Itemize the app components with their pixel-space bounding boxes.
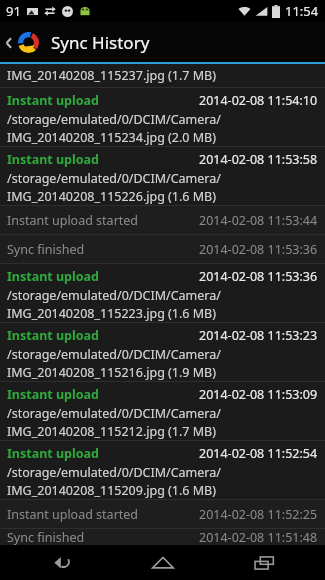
staticText: 2014-02-08 11:52:25 [199,506,318,523]
staticText: /storage/emulated/0/DCIM/Camera/ [7,405,221,422]
staticText: Instant upload started [7,506,139,523]
staticText: 11:54 [285,2,319,20]
staticText: IMG_20140208_115212.jpg (1.7 MB) [7,423,216,440]
staticText: 2014-02-08 11:53:58 [199,151,318,168]
staticText: /storage/emulated/0/DCIM/Camera/ [7,464,221,481]
button[interactable]: Home [123,545,203,580]
staticText: /storage/emulated/0/DCIM/Camera/ [7,170,221,187]
staticText: /storage/emulated/0/DCIM/Camera/ [7,346,221,363]
staticText: 2014-02-08 11:51:48 [199,529,318,545]
staticText: Sync finished [7,529,85,545]
staticText: IMG_20140208_115234.jpg (2.0 MB) [7,129,216,146]
button[interactable]: IMG_20140208_115237.jpg (1.7 MB) [0,64,325,87]
button[interactable]: Sync finished [0,529,325,545]
button[interactable]: Instant upload [0,88,325,146]
button[interactable]: Instant upload [0,323,325,381]
staticText: /storage/emulated/0/DCIM/Camera/ [7,287,221,304]
button[interactable]: Recent apps [224,545,304,580]
staticText: 2014-02-08 11:52:54 [199,445,318,462]
button[interactable]: Back [21,545,101,580]
staticText: IMG_20140208_115237.jpg (1.7 MB) [7,67,216,84]
button[interactable]: Instant upload [0,264,325,322]
button[interactable]: Instant upload [0,382,325,440]
staticText: 2014-02-08 11:53:09 [199,386,318,403]
staticText: Instant upload started [7,212,139,229]
staticText: Sync finished [7,241,85,258]
staticText: Sync History [51,31,150,54]
button[interactable]: Instant upload [0,147,325,205]
staticText: 2014-02-08 11:53:44 [199,212,318,229]
button[interactable]: Instant upload started [0,206,325,234]
staticText: Instant upload [7,327,99,344]
button[interactable]: Navigate up [0,27,42,58]
button[interactable]: Instant upload started [0,500,325,528]
staticText: Instant upload [7,151,99,168]
staticText: 2014-02-08 11:53:36 [199,241,318,258]
staticText: IMG_20140208_115223.jpg (1.6 MB) [7,305,216,322]
staticText: Instant upload [7,92,99,109]
button[interactable]: Instant upload [0,441,325,499]
staticText: 2014-02-08 11:53:23 [199,327,318,344]
staticText: 91 [6,2,21,20]
staticText: Instant upload [7,445,99,462]
staticText: Instant upload [7,268,99,285]
staticText: 2014-02-08 11:53:36 [199,268,318,285]
staticText: Instant upload [7,386,99,403]
staticText: /storage/emulated/0/DCIM/Camera/ [7,111,221,128]
staticText: IMG_20140208_115216.jpg (1.9 MB) [7,364,216,381]
staticText: IMG_20140208_115209.jpg (1.6 MB) [7,482,216,499]
staticText: 2014-02-08 11:54:10 [199,92,318,109]
button[interactable]: Sync finished [0,235,325,263]
staticText: IMG_20140208_115226.jpg (1.6 MB) [7,188,216,205]
